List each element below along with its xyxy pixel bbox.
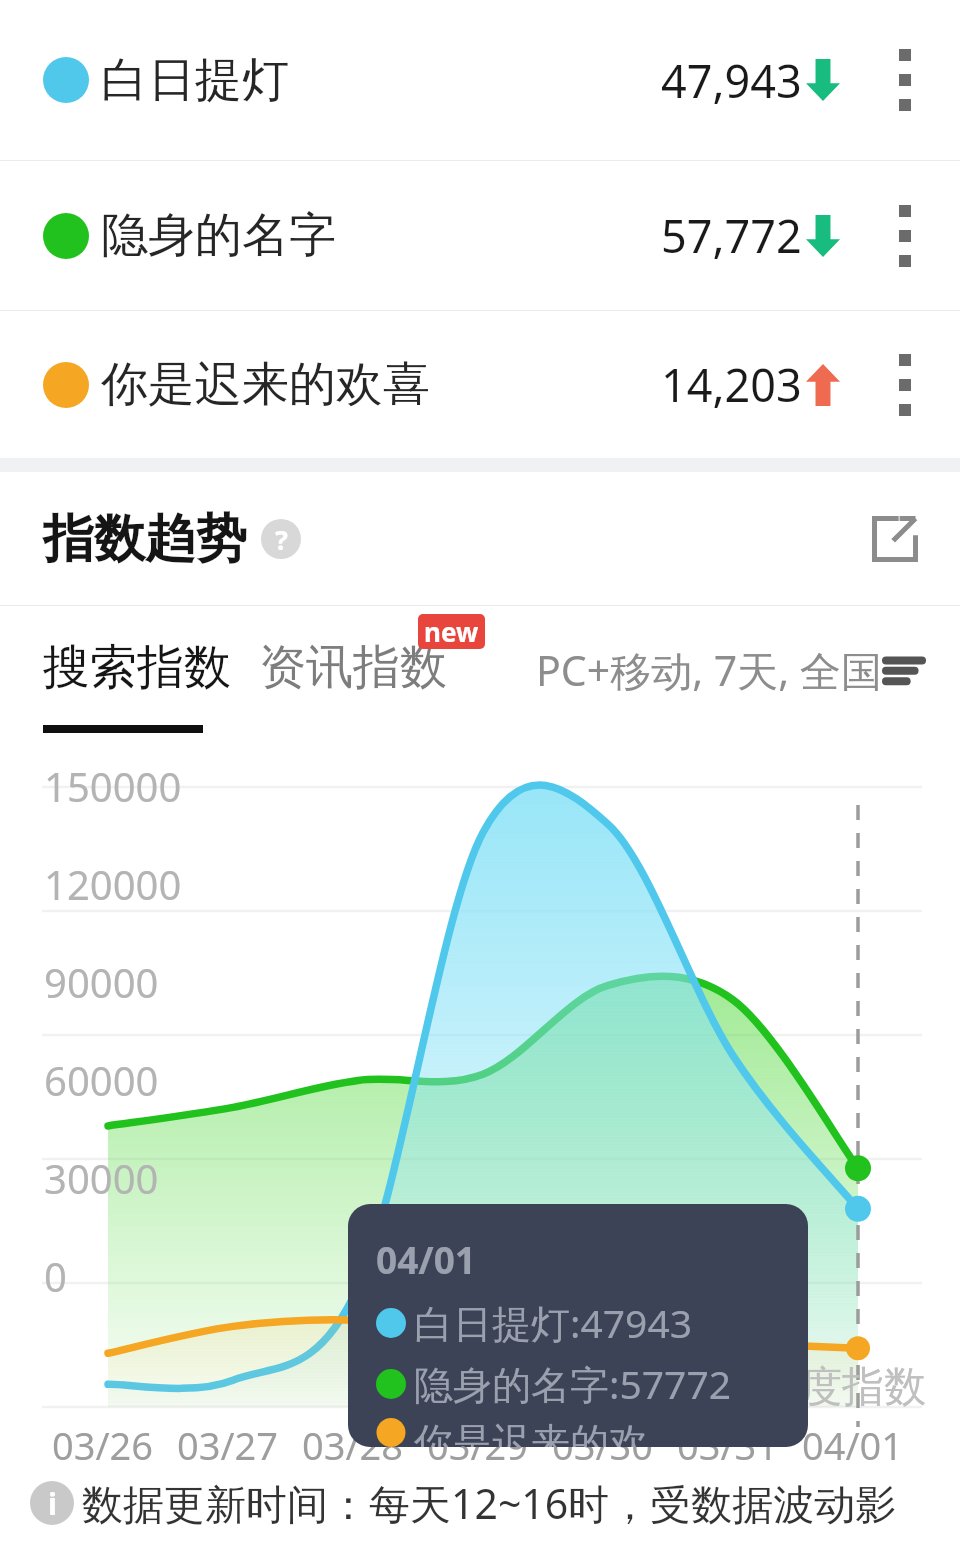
staticText: 120000 [44,857,182,911]
staticText: 03/26 [52,1419,154,1471]
button[interactable]: 白日提灯 [0,0,960,160]
staticText: 14,203 [661,354,802,415]
button[interactable]: More options [880,335,930,435]
staticText: 03/31 [677,1419,779,1471]
staticText: 数据更新时间：每天12~16时，受数据波动影响，可能会有延 [82,1475,960,1531]
staticText: 03/29 [427,1419,529,1471]
staticText: 30000 [44,1151,159,1205]
staticText: 03/28 [302,1419,404,1471]
staticText: 04/01 [376,1234,477,1284]
button[interactable]: Open full screen [866,510,924,568]
staticText: 白日提灯:47943 [414,1296,692,1349]
staticText: 03/27 [177,1419,279,1471]
staticText: 04/01 [802,1419,904,1471]
button[interactable]: 你是迟来的欢喜 [0,311,960,458]
staticText: 度指数 [800,1361,926,1414]
button[interactable]: More options [880,186,930,286]
staticText: 47,943 [661,50,802,111]
staticText: PC+移动, 7天, 全国 [536,642,882,698]
button[interactable]: 隐身的名字 [0,161,960,310]
staticText: 57,772 [661,205,802,266]
staticText: 隐身的名字 [101,206,336,265]
staticText: 03/30 [552,1419,654,1471]
staticText: 搜索指数 [43,638,231,697]
button[interactable]: 搜索指数 [43,638,231,697]
staticText: 你是迟来的欢喜:14203 [414,1418,808,1447]
button[interactable]: 资讯指数 [259,638,447,697]
staticText: 90000 [44,955,159,1009]
button[interactable]: Help [261,519,301,559]
button[interactable]: PC+移动, 7天, 全国 [536,638,926,698]
staticText: 150000 [44,759,182,813]
staticText: 60000 [44,1053,159,1107]
staticText: 0 [44,1249,67,1303]
staticText: i [48,1483,57,1524]
staticText: 你是迟来的欢喜 [101,355,430,414]
staticText: 白日提灯 [101,51,289,110]
button[interactable]: More options [880,30,930,130]
button[interactable]: 04/01 [348,1204,808,1447]
staticText: ? [275,521,288,558]
staticText: 资讯指数 [259,638,447,697]
staticText: 隐身的名字:57772 [414,1357,731,1410]
staticText: 指数趋势 [43,507,247,571]
staticText: new [424,614,479,649]
